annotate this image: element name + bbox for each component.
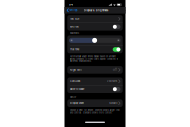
staticText: Text Size	[70, 17, 79, 20]
staticText: Auto-Lock	[70, 80, 80, 83]
button[interactable]: Display Zoom	[67, 99, 123, 107]
staticText: Raise to Wake	[70, 88, 84, 90]
button[interactable]: Auto-Lock	[67, 77, 123, 85]
staticText: 2 Minutes	[107, 80, 117, 83]
staticText: 9:41	[69, 3, 73, 6]
staticText: BRIGHTNESS	[70, 32, 79, 34]
button[interactable]: Settings	[64, 7, 77, 14]
staticText: Settings	[69, 9, 77, 12]
staticText: True Tone	[70, 48, 79, 51]
staticText: Bold Text	[70, 25, 79, 28]
button[interactable]: Bold Text	[67, 23, 123, 31]
staticText: Choose a view for iPhone. Zoomed shows l…	[70, 109, 120, 114]
button[interactable]: True Tone	[67, 46, 123, 53]
staticText: Standard	[109, 102, 117, 104]
staticText: Display & Brightness	[84, 9, 108, 12]
staticText: DISPLAY	[70, 96, 76, 98]
staticText: Night Shift	[70, 68, 82, 71]
staticText: Display Zoom	[70, 102, 84, 104]
staticText: Off	[113, 68, 117, 71]
button[interactable]: Raise to Wake	[67, 85, 123, 93]
button[interactable]: Text Size	[67, 15, 123, 23]
button[interactable]: Night Shift	[67, 66, 123, 74]
staticText: Automatically adapt iPhone display based…	[70, 55, 118, 62]
